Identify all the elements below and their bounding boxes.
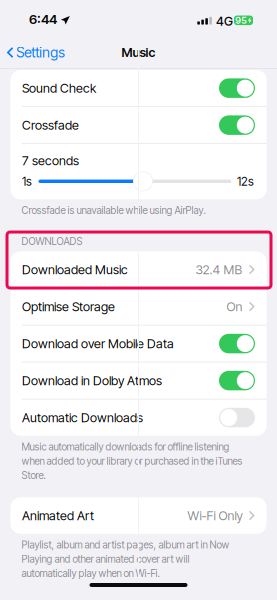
staticText: Downloaded Music: [22, 262, 128, 277]
staticText: Music: [121, 45, 155, 60]
staticText: Music automatically downloads for offlin…: [21, 441, 242, 481]
staticText: Download over Mobile Data: [22, 336, 174, 351]
button[interactable]: Settings: [0, 37, 71, 68]
button[interactable]: Automatic Downloads: [10, 399, 266, 436]
button[interactable]: Optimise Storage: [10, 288, 266, 325]
staticText: Crossfade is unavailable while using Air…: [21, 204, 205, 216]
staticText: Download in Dolby Atmos: [22, 373, 162, 388]
staticText: 7 seconds: [22, 153, 79, 168]
button[interactable]: Sound Check: [10, 70, 266, 106]
staticText: 32.4 MB: [195, 262, 242, 277]
staticText: Crossfade: [22, 117, 79, 133]
button[interactable]: Download over Mobile Data: [10, 325, 266, 362]
staticText: DOWNLOADS: [21, 235, 82, 247]
staticText: Automatic Downloads: [22, 410, 143, 425]
staticText: 12s: [237, 174, 254, 189]
staticText: Optimise Storage: [22, 299, 115, 314]
staticText: 95: [235, 15, 247, 26]
button[interactable]: Crossfade: [10, 107, 266, 143]
button[interactable]: Downloaded Music: [10, 251, 266, 288]
button[interactable]: Animated Art: [10, 497, 266, 534]
staticText: Sound Check: [22, 80, 96, 96]
staticText: 4G: [216, 13, 233, 29]
staticText: Wi-Fi Only: [187, 508, 242, 523]
staticText: On: [226, 299, 242, 314]
staticText: 1s: [22, 174, 32, 189]
staticText: Playlist, album and artist pages, album …: [21, 539, 229, 579]
button[interactable]: Download in Dolby Atmos: [10, 362, 266, 399]
staticText: Animated Art: [22, 508, 94, 523]
staticText: 6:44: [29, 11, 57, 27]
staticText: Settings: [16, 44, 65, 61]
